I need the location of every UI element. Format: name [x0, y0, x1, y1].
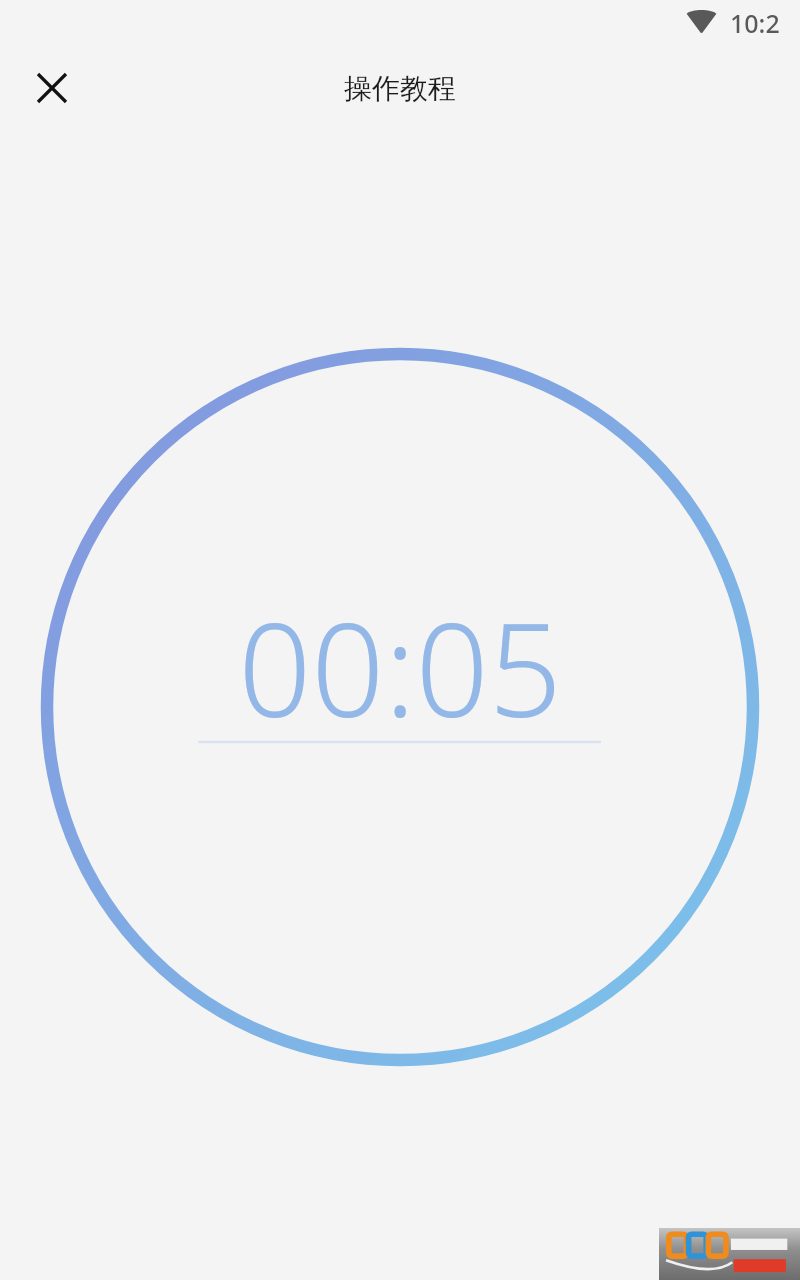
other: Wi-Fi signal [686, 11, 717, 33]
staticText: 10:23 [730, 6, 790, 38]
button[interactable]: Close [16, 52, 88, 124]
staticText: 操作教程 [344, 71, 456, 106]
staticText: 00:05 [238, 580, 562, 732]
